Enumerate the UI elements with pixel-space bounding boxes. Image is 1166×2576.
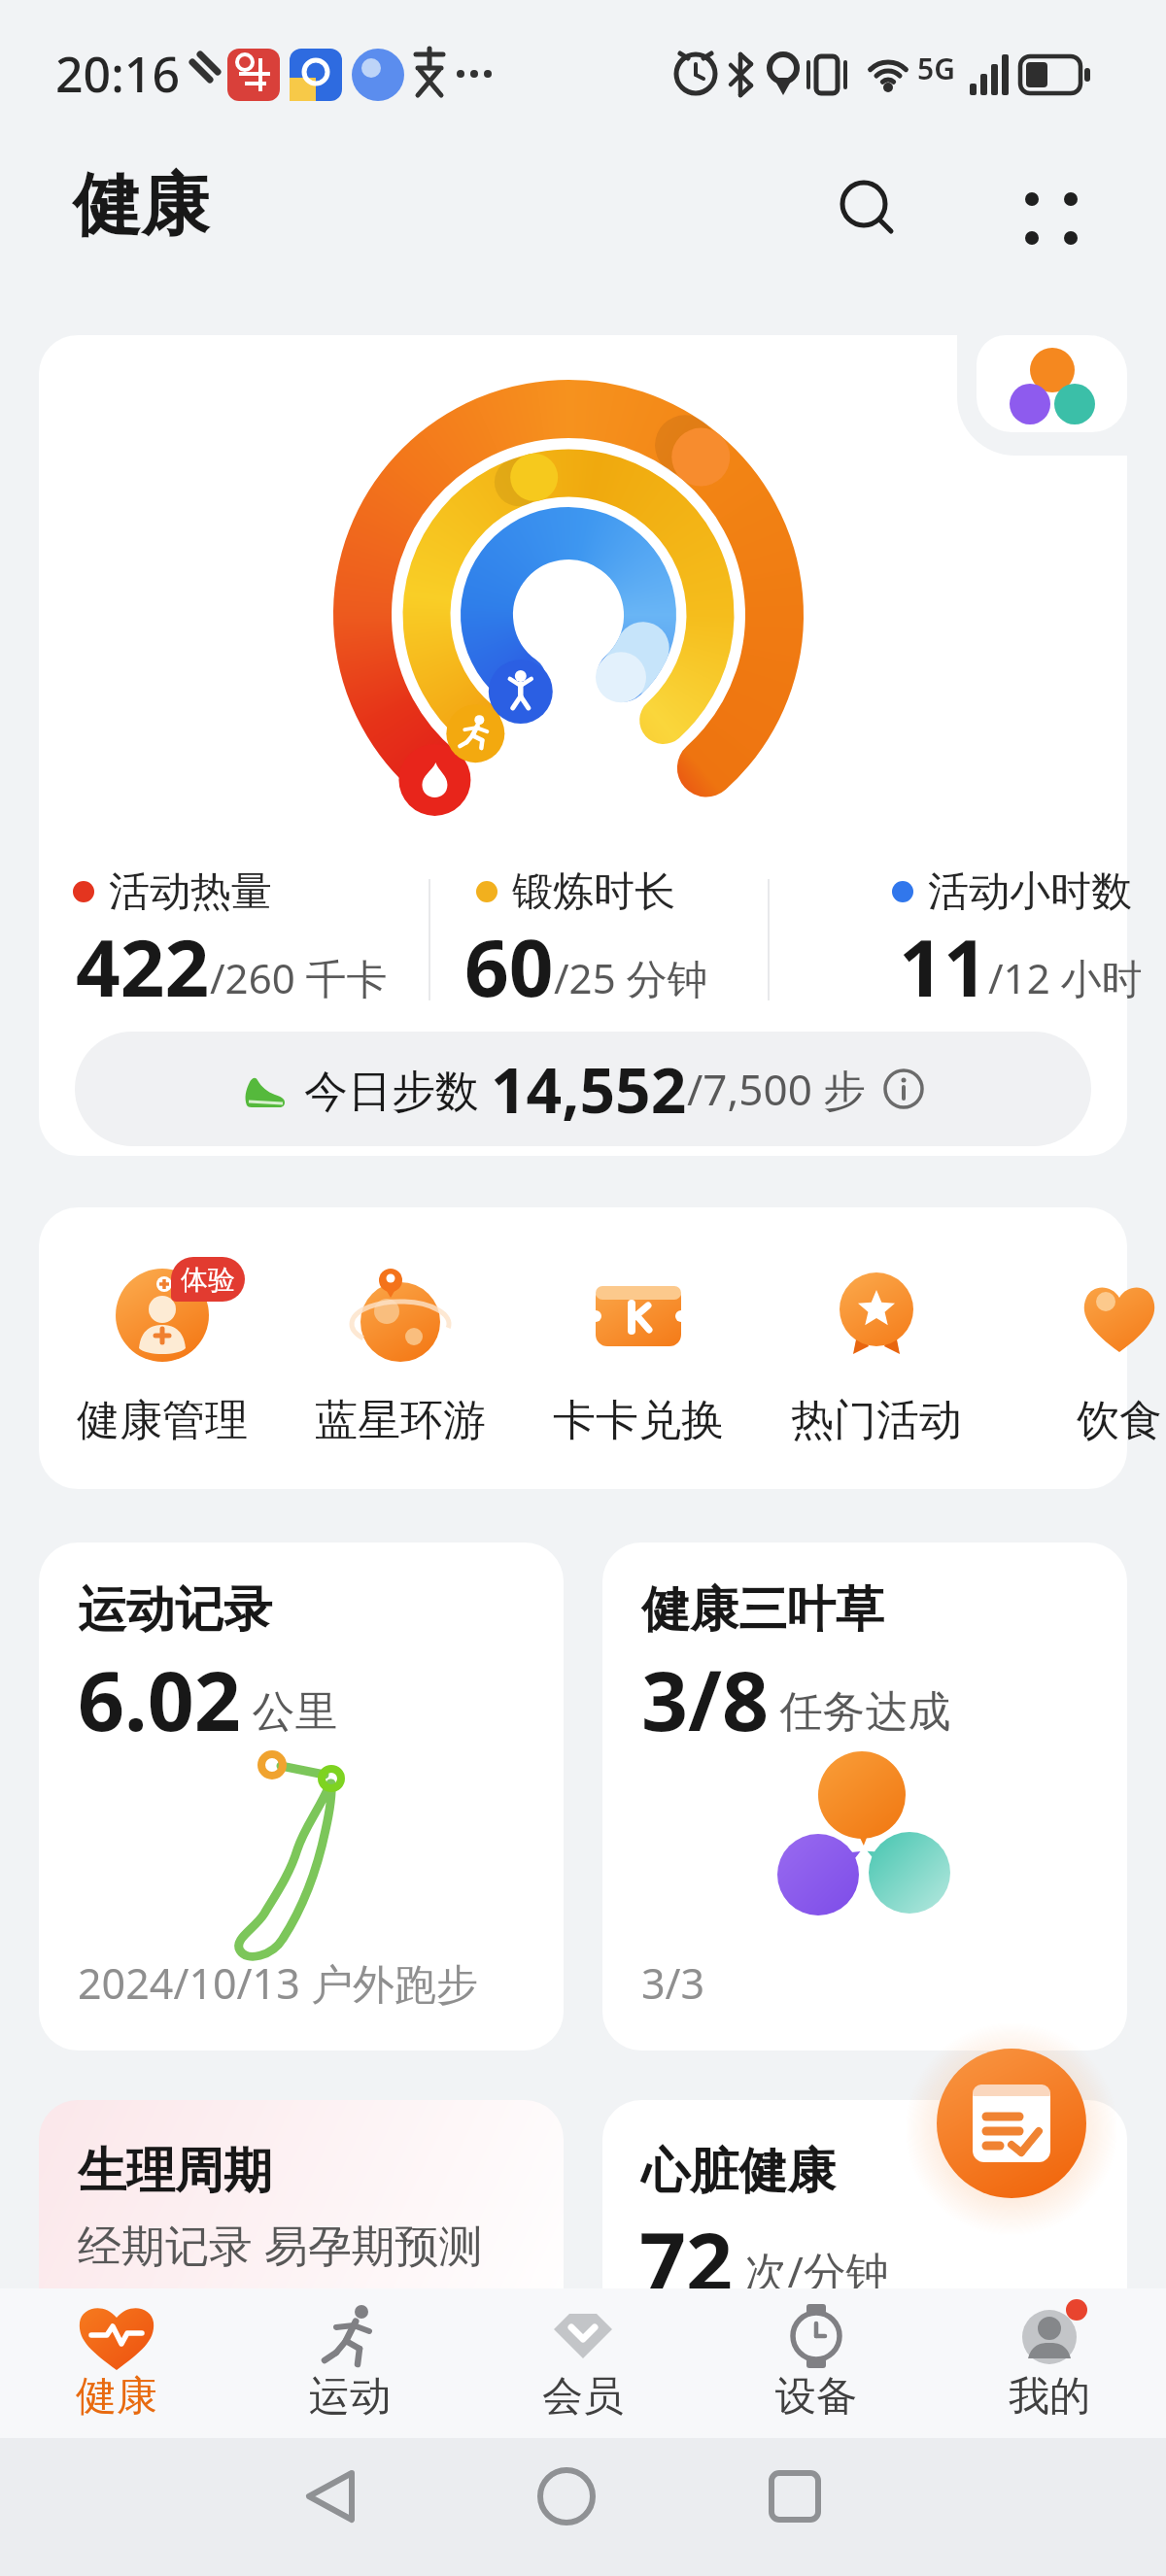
button[interactable] xyxy=(937,2049,1086,2198)
staticText: 设备 xyxy=(775,2371,857,2423)
button[interactable]: 蓝星环游 xyxy=(313,1253,488,1447)
button[interactable]: 心脏健康 xyxy=(602,2100,1127,2353)
staticText: 锻炼时长 xyxy=(512,866,675,918)
staticText: 3/8 xyxy=(641,1644,769,1754)
staticText: 卡卡兑换 xyxy=(553,1394,724,1447)
staticText: 我的 xyxy=(1009,2371,1090,2423)
button[interactable]: 健康管理 xyxy=(75,1253,250,1447)
button[interactable] xyxy=(977,335,1127,432)
staticText: 体验 xyxy=(181,1263,235,1297)
staticText: 健康管理 xyxy=(77,1394,248,1447)
staticText: 热门活动 xyxy=(791,1394,962,1447)
button[interactable]: 热门活动 xyxy=(789,1253,964,1447)
staticText: 心脏健康 xyxy=(641,2141,836,2202)
staticText: 活动热量 xyxy=(109,866,272,918)
staticText: 会员 xyxy=(542,2371,624,2423)
staticText: 运动记录 xyxy=(78,1579,272,1641)
button[interactable]: 我的 xyxy=(933,2288,1166,2438)
staticText: 72 xyxy=(639,2205,734,2316)
button[interactable]: 会员 xyxy=(466,2288,700,2438)
button[interactable]: 卡卡兑换 xyxy=(551,1253,726,1447)
staticText: 饮食 xyxy=(1077,1394,1162,1447)
button[interactable]: 运动 xyxy=(233,2288,466,2438)
staticText: 5G xyxy=(917,49,955,88)
staticText: 60 xyxy=(464,913,554,1019)
button[interactable]: 今日步数 xyxy=(75,1032,1091,1146)
staticText: 健康 xyxy=(76,2371,157,2423)
staticText: 蓝星环游 xyxy=(315,1394,486,1447)
button[interactable]: 生理周期 xyxy=(39,2100,564,2353)
staticText: 经期记录 易孕期预测 xyxy=(78,2215,483,2274)
staticText: 健康三叶草 xyxy=(641,1579,884,1641)
staticText: 任务达成 xyxy=(769,1680,951,1739)
button[interactable]: 设备 xyxy=(700,2288,933,2438)
staticText: /260 千卡 xyxy=(210,950,388,1005)
button[interactable]: 饮食 xyxy=(1032,1253,1166,1447)
staticText: 20:16 xyxy=(55,41,180,107)
staticText: 生理周期 xyxy=(78,2141,272,2202)
staticText: 次/分钟 xyxy=(734,2242,889,2300)
staticText: 公里 xyxy=(241,1680,338,1739)
staticText: 活动小时数 xyxy=(928,866,1132,918)
staticText: 422 xyxy=(76,913,210,1019)
staticText: 今日步数 xyxy=(304,1060,491,1119)
button[interactable]: 健康 xyxy=(0,2288,233,2438)
staticText: 3/3 xyxy=(641,1954,705,2012)
staticText: 2024/10/13 户外跑步 xyxy=(78,1954,478,2012)
button[interactable]: 健康三叶草 xyxy=(602,1542,1127,2051)
button[interactable] xyxy=(1018,186,1080,248)
staticText: 11 xyxy=(899,913,988,1019)
staticText: 14,552 xyxy=(491,1047,687,1132)
staticText: 6.02 xyxy=(78,1644,241,1754)
button[interactable] xyxy=(39,335,1127,1156)
button[interactable]: 运动记录 xyxy=(39,1542,564,2051)
staticText: /7,500 步 xyxy=(687,1060,867,1118)
staticText: /12 小时 xyxy=(988,950,1143,1005)
staticText: 健康 xyxy=(73,163,209,249)
staticText: 运动 xyxy=(309,2371,391,2423)
button[interactable] xyxy=(831,171,909,249)
staticText: /25 分钟 xyxy=(554,950,708,1005)
